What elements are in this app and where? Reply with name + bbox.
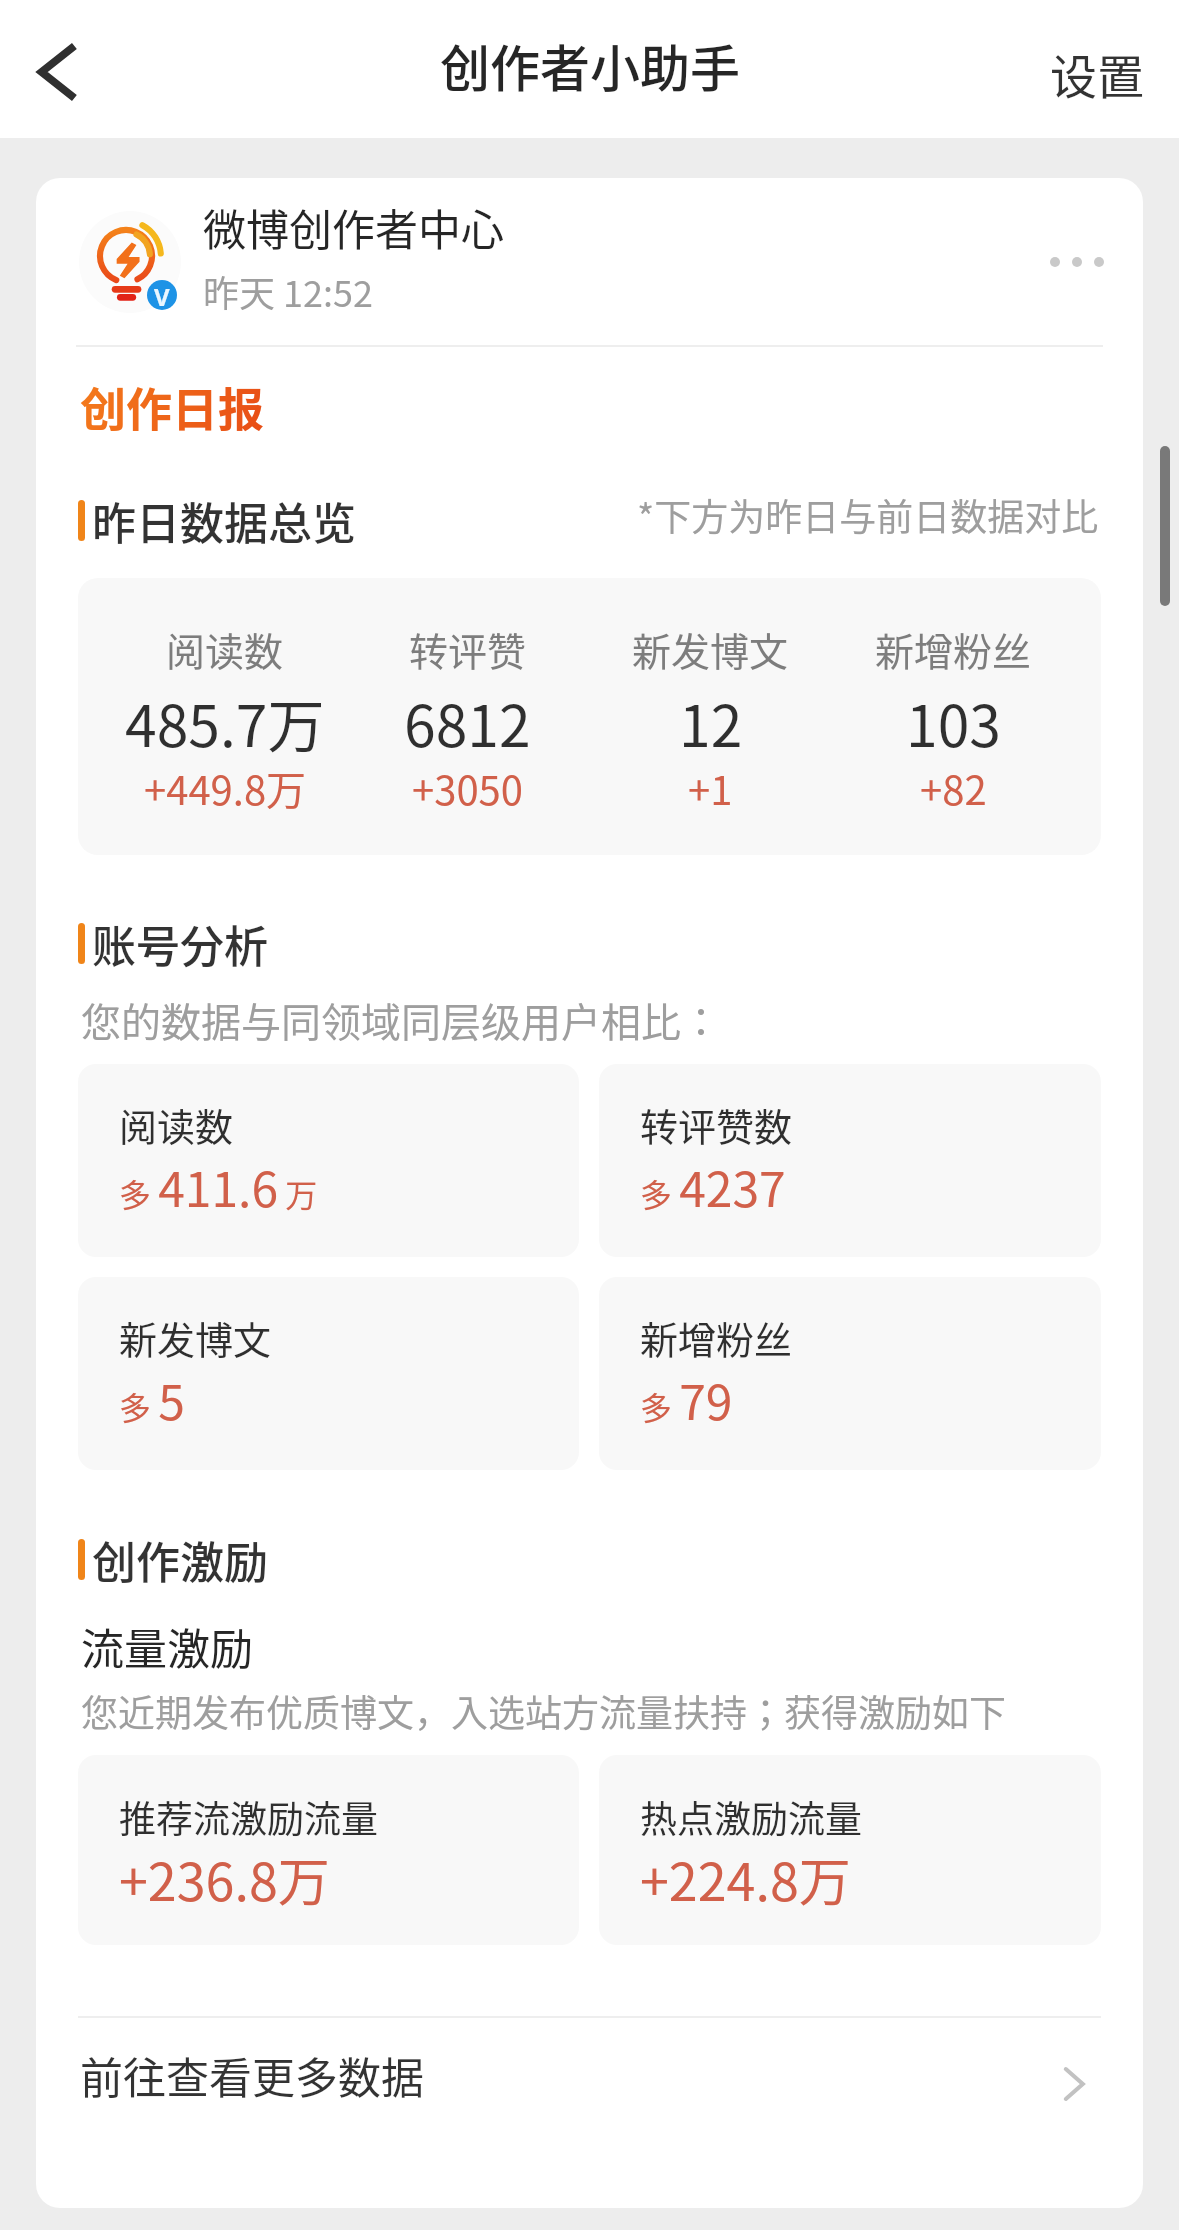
button[interactable]: 新增粉丝: [599, 1277, 1101, 1470]
staticText: 多 79: [640, 1364, 733, 1434]
staticText: 流量激励: [81, 1615, 253, 1677]
staticText: 新增粉丝: [640, 1310, 793, 1365]
staticText: 昨天 12:52: [203, 265, 373, 317]
staticText: 账号分析: [92, 912, 268, 976]
staticText: 推荐流激励流量: [119, 1790, 378, 1844]
staticText: 新发博文: [119, 1310, 272, 1365]
staticText: 创作日报: [80, 373, 264, 440]
staticText: 设置: [1050, 39, 1144, 107]
staticText: 6812: [404, 681, 531, 764]
staticText: 创作者小助手: [440, 29, 740, 101]
staticText: +449.8万: [144, 759, 307, 817]
staticText: 多 5: [119, 1364, 185, 1434]
staticText: +236.8万: [119, 1841, 330, 1916]
staticText: 您近期发布优质博文，入选站方流量扶持；获得激励如下: [81, 1684, 1006, 1738]
button[interactable]: 设置: [1010, 0, 1179, 138]
staticText: 转评赞: [409, 621, 527, 677]
staticText: +224.8万: [640, 1841, 851, 1916]
staticText: 微博创作者中心: [203, 196, 504, 258]
button[interactable]: 推荐流激励流量: [78, 1755, 579, 1945]
button[interactable]: 阅读数: [78, 1064, 579, 1257]
button[interactable]: 新发博文: [78, 1277, 579, 1470]
staticText: +3050: [412, 759, 523, 817]
staticText: 前往查看更多数据: [80, 2044, 424, 2106]
staticText: +1: [688, 759, 733, 817]
staticText: 您的数据与同领域同层级用户相比：: [81, 991, 721, 1049]
staticText: 阅读数: [166, 621, 284, 677]
staticText: 多 4237: [640, 1151, 786, 1221]
staticText: 阅读数: [119, 1097, 234, 1152]
staticText: 12: [679, 681, 743, 764]
staticText: 103: [906, 681, 1001, 764]
button[interactable]: Back: [0, 0, 120, 138]
button[interactable]: More options: [1034, 241, 1120, 283]
button[interactable]: 转评赞数: [599, 1064, 1101, 1257]
button[interactable]: 阅读数: [78, 578, 1101, 855]
button[interactable]: 热点激励流量: [599, 1755, 1101, 1945]
staticText: 创作激励: [92, 1528, 268, 1592]
staticText: 热点激励流量: [640, 1790, 862, 1844]
staticText: 新发博文: [632, 621, 789, 677]
staticText: 新增粉丝: [875, 621, 1032, 677]
staticText: *下方为昨日与前日数据对比: [637, 488, 1099, 542]
staticText: 多 411.6 万: [119, 1151, 318, 1221]
staticText: 昨日数据总览: [92, 489, 356, 553]
staticText: V: [154, 280, 170, 310]
staticText: +82: [920, 759, 987, 817]
button[interactable]: V: [36, 178, 1143, 345]
staticText: 485.7万: [125, 681, 325, 764]
staticText: 转评赞数: [640, 1097, 793, 1152]
button[interactable]: 前往查看更多数据: [36, 2018, 1143, 2146]
